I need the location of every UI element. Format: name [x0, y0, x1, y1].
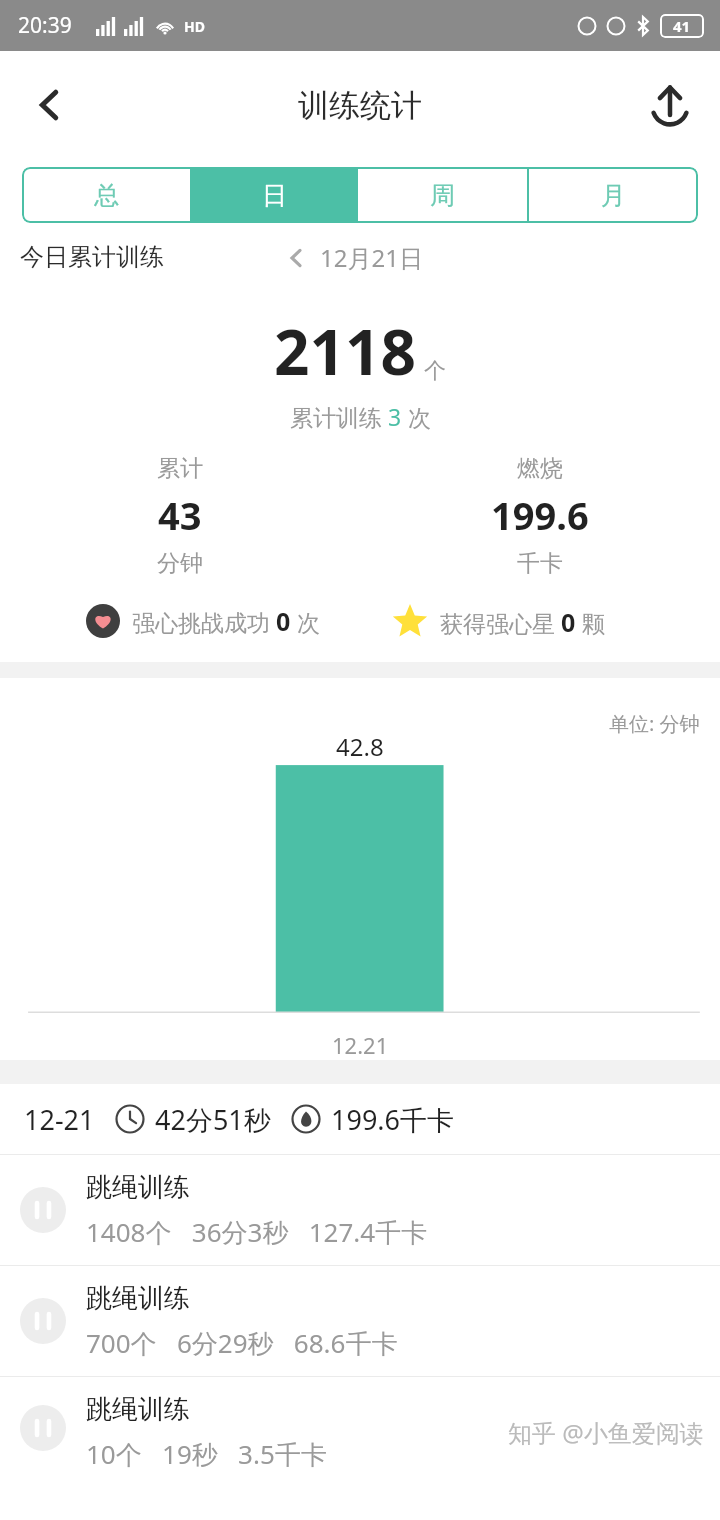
staticText: 700个 6分29秒 68.6千卡 [86, 1325, 398, 1361]
staticText: 2118 [274, 309, 416, 393]
staticText: 周 [430, 180, 455, 211]
staticText: 次 [291, 606, 320, 637]
staticText: 3 [388, 401, 402, 432]
staticText: 42分51秒 [155, 1101, 271, 1138]
staticText: 跳绳训练 [86, 1393, 190, 1426]
staticText: HD [184, 17, 205, 36]
button[interactable]: 12月21日 [286, 241, 423, 274]
button[interactable]: Share [638, 73, 702, 137]
staticText: 燃烧 [517, 454, 563, 483]
staticText: 日 [262, 180, 287, 211]
button[interactable]: 月 [529, 167, 698, 223]
button[interactable]: 日 [190, 167, 358, 223]
staticText: 20:39 [18, 11, 72, 40]
staticText: 43 [158, 489, 202, 541]
staticText: 1408个 36分3秒 127.4千卡 [86, 1214, 428, 1250]
staticText: 跳绳训练 [86, 1171, 190, 1204]
staticText: 累计 [157, 454, 203, 483]
staticText: 训练统计 [298, 86, 422, 125]
staticText: 0 [276, 604, 291, 638]
staticText: 12.21 [332, 1030, 389, 1060]
staticText: 个 [424, 357, 446, 385]
staticText: 12月21日 [320, 241, 423, 274]
staticText: 今日累计训练 [20, 242, 164, 272]
staticText: 199.6 [491, 489, 589, 541]
staticText: 12-21 [24, 1101, 95, 1138]
staticText: 强心挑战成功 [132, 606, 276, 637]
staticText: 41 [673, 16, 691, 36]
staticText: 42.8 [336, 730, 384, 763]
staticText: 月 [601, 180, 626, 211]
button[interactable]: 总 [22, 167, 190, 223]
staticText: 知乎 @小鱼爱阅读 [508, 1416, 704, 1449]
staticText: 总 [94, 180, 119, 211]
staticText: 10个 19秒 3.5千卡 [86, 1436, 327, 1472]
button[interactable]: 跳绳训练 [0, 1266, 720, 1376]
staticText: 千卡 [517, 549, 563, 578]
button[interactable]: 周 [358, 167, 527, 223]
button[interactable]: 跳绳训练 [0, 1155, 720, 1265]
staticText: 次 [402, 401, 431, 432]
staticText: 199.6千卡 [331, 1101, 455, 1138]
staticText: 分钟 [157, 549, 203, 578]
staticText: 颗 [576, 607, 605, 638]
button[interactable]: 12-21 [0, 1084, 720, 1154]
staticText: 0 [561, 605, 576, 639]
staticText: 累计训练 [290, 401, 388, 432]
staticText: 跳绳训练 [86, 1282, 190, 1315]
button[interactable]: Back [18, 73, 82, 137]
button[interactable]: 跳绳训练 [0, 1377, 720, 1487]
staticText: 单位: 分钟 [609, 710, 700, 737]
staticText: 获得强心星 [440, 607, 561, 638]
